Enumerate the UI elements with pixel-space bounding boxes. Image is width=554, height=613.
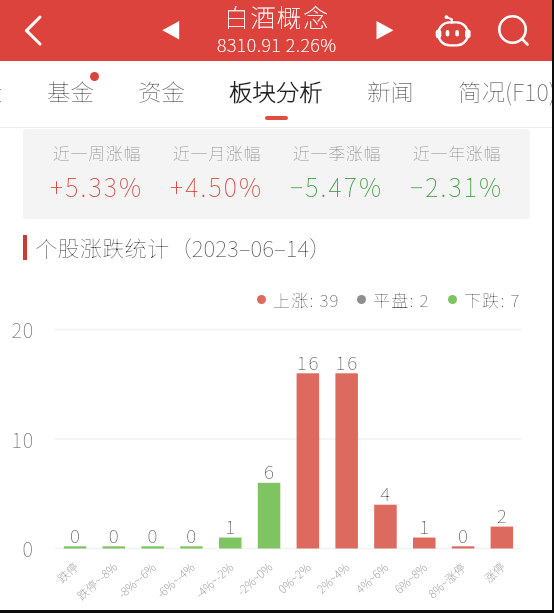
staticText: 下跌: 7 xyxy=(464,287,521,312)
staticText: 近一年涨幅 xyxy=(413,140,501,165)
staticText: 白酒概念 xyxy=(224,0,330,34)
staticText: −5.47% xyxy=(290,168,384,204)
staticText: 板块分析 xyxy=(229,74,323,108)
button[interactable]: 平盘: 2 xyxy=(357,287,430,312)
button[interactable]: 股 xyxy=(0,61,3,128)
button[interactable]: 新闻 xyxy=(367,61,414,128)
button[interactable]: 上涨: 39 xyxy=(257,287,340,312)
staticText: −2.31% xyxy=(410,168,504,204)
staticText: 平盘: 2 xyxy=(373,287,430,312)
staticText: 股 xyxy=(0,74,3,108)
button[interactable]: 近一月涨幅 xyxy=(157,140,277,204)
staticText: 简况(F10) xyxy=(458,74,554,108)
staticText: 上涨: 39 xyxy=(273,287,340,312)
button[interactable]: 基金 xyxy=(47,61,94,128)
button[interactable]: AI assistant xyxy=(429,0,477,61)
staticText: 近一周涨幅 xyxy=(53,140,141,165)
button[interactable]: 下跌: 7 xyxy=(448,287,521,312)
button[interactable]: 近一周涨幅 xyxy=(36,140,157,204)
button[interactable]: 简况(F10) xyxy=(458,61,554,128)
button[interactable]: 板块分析 xyxy=(229,61,323,128)
staticText: 近一季涨幅 xyxy=(293,140,381,165)
button[interactable]: 近一年涨幅 xyxy=(397,140,517,204)
button[interactable]: Next sector xyxy=(362,0,408,61)
staticText: 8310.91 2.26% xyxy=(217,31,337,56)
staticText: 近一月涨幅 xyxy=(173,140,261,165)
button[interactable]: 资金 xyxy=(138,61,185,128)
staticText: 个股涨跌统计（2023–06–14） xyxy=(35,231,332,263)
button[interactable]: 近一季涨幅 xyxy=(277,140,397,204)
button[interactable]: Previous sector xyxy=(148,0,194,61)
staticText: 基金 xyxy=(47,74,94,108)
button[interactable]: Back xyxy=(0,0,60,61)
staticText: +5.33% xyxy=(50,168,144,204)
staticText: 新闻 xyxy=(367,74,414,108)
staticText: +4.50% xyxy=(170,168,264,204)
button[interactable]: Search xyxy=(488,0,536,61)
staticText: 资金 xyxy=(138,74,185,108)
